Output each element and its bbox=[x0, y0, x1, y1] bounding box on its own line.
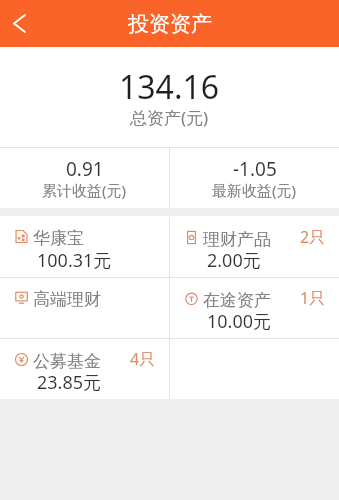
staticText: 23.85元 bbox=[37, 370, 102, 395]
staticText: 在途资产 bbox=[203, 290, 271, 311]
button[interactable]: 华康宝 bbox=[0, 217, 169, 277]
staticText: 理财产品 bbox=[203, 229, 271, 250]
staticText: 134.16 bbox=[119, 65, 220, 109]
staticText: -1.05 bbox=[233, 156, 277, 182]
staticText: 累计收益(元) bbox=[42, 180, 127, 200]
staticText: 最新收益(元) bbox=[212, 180, 297, 200]
button[interactable]: 高端理财 bbox=[0, 278, 169, 338]
staticText: 10.00元 bbox=[207, 309, 272, 334]
staticText: 2只 bbox=[300, 226, 326, 248]
button[interactable]: Back bbox=[0, 0, 40, 47]
staticText: 0.91 bbox=[66, 156, 104, 182]
staticText: 总资产(元) bbox=[130, 106, 209, 129]
staticText: 华康宝 bbox=[33, 228, 84, 249]
button[interactable]: 公募基金 bbox=[0, 339, 169, 399]
staticText: 1只 bbox=[300, 287, 326, 309]
button[interactable]: 理财产品 bbox=[170, 217, 339, 277]
button[interactable]: 0.91 bbox=[0, 148, 169, 208]
staticText: 4只 bbox=[130, 348, 156, 370]
staticText: 高端理财 bbox=[33, 289, 101, 310]
staticText: 公募基金 bbox=[33, 351, 101, 372]
button[interactable]: -1.05 bbox=[170, 148, 339, 208]
staticText: 2.00元 bbox=[207, 248, 261, 273]
button[interactable]: 在途资产 bbox=[170, 278, 339, 338]
staticText: 投资资产 bbox=[128, 11, 212, 37]
staticText: 100.31元 bbox=[37, 248, 112, 273]
